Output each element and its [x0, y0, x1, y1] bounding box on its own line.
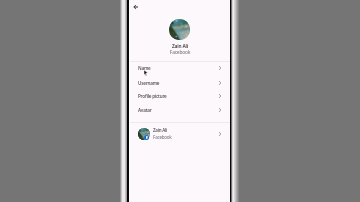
button[interactable]: Name [130, 61, 230, 75]
staticText: Profile picture [138, 93, 167, 99]
button[interactable]: Profile picture [130, 89, 230, 103]
button[interactable]: Avatar [130, 103, 230, 117]
staticText: Facebook [130, 49, 230, 56]
staticText: f [146, 135, 148, 140]
staticText: Zain Ali [130, 43, 230, 49]
staticText: Name [138, 65, 151, 71]
staticText: Zain Ali [153, 127, 168, 133]
staticText: Avatar [138, 107, 152, 113]
button[interactable]: Username [130, 76, 230, 90]
button[interactable]: Back [130, 0, 143, 13]
staticText: Username [138, 80, 160, 86]
button[interactable]: f [130, 124, 230, 143]
staticText: Facebook [153, 134, 172, 140]
